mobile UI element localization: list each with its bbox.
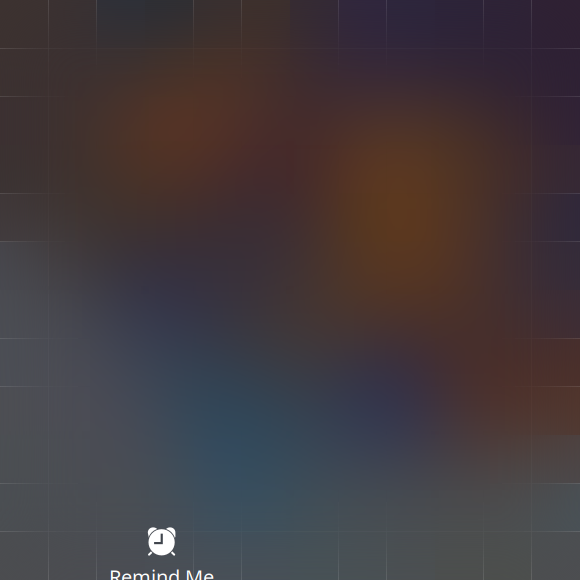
staticText: Remind Me xyxy=(109,563,214,580)
button[interactable]: Remind Me xyxy=(63,516,260,580)
